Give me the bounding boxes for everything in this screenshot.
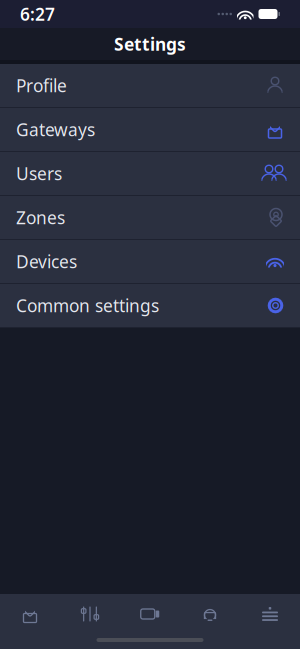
- staticText: Settings: [114, 32, 186, 55]
- staticText: Devices: [16, 250, 77, 273]
- button[interactable]: Common settings: [0, 284, 300, 328]
- button[interactable]: Home: [0, 597, 60, 631]
- staticText: Users: [16, 162, 62, 185]
- button[interactable]: Cameras: [120, 597, 180, 631]
- staticText: Common settings: [16, 294, 159, 317]
- button[interactable]: Zones: [0, 196, 300, 240]
- staticText: Profile: [16, 74, 67, 97]
- button[interactable]: Menu: [240, 597, 300, 631]
- button[interactable]: Devices: [0, 240, 300, 284]
- staticText: Gateways: [16, 118, 95, 141]
- button[interactable]: Controls: [60, 597, 120, 631]
- button[interactable]: Gateways: [0, 108, 300, 152]
- button[interactable]: Profile: [0, 64, 300, 108]
- button[interactable]: Notifications: [180, 597, 240, 631]
- button[interactable]: Users: [0, 152, 300, 196]
- staticText: 6:27: [20, 2, 55, 25]
- staticText: Zones: [16, 206, 65, 229]
